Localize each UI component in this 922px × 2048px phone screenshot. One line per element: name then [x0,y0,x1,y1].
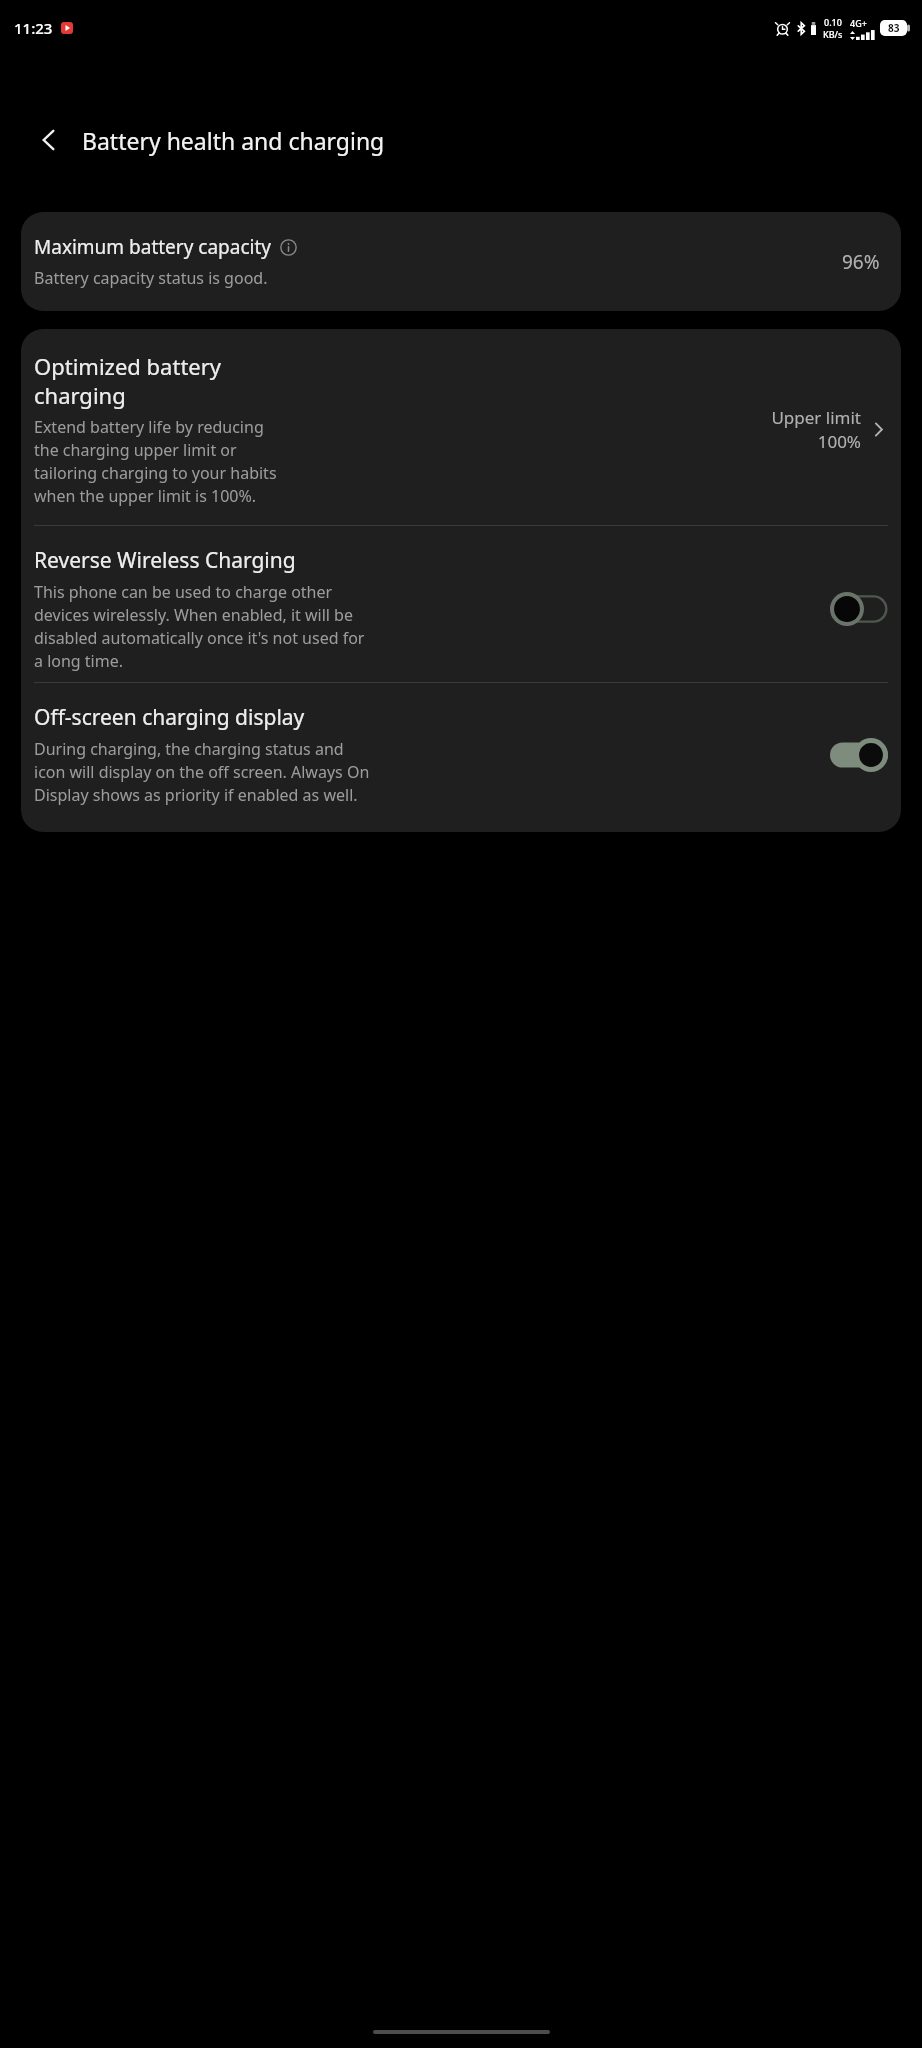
staticText: This phone can be used to charge other d… [34,581,365,672]
staticText: Maximum battery capacity [34,234,272,260]
staticText: 11:23 [14,18,53,38]
button[interactable]: Optimized battery charging [21,329,901,525]
staticText: 96% [842,249,880,275]
staticText: 83 [888,21,900,35]
staticText: Reverse Wireless Charging [34,546,296,575]
staticText: Extend battery life by reducing the char… [34,416,277,507]
button[interactable]: Back [26,117,72,163]
staticText: Optimized battery charging [34,351,222,410]
button[interactable]: Reverse Wireless Charging [21,526,901,682]
staticText: KB/s [823,28,843,40]
staticText: Upper limit 100% [771,406,861,453]
other: Reverse Wireless Charging off [830,592,888,626]
button[interactable]: Maximum battery capacity [21,212,901,311]
button[interactable]: Off-screen charging display [21,683,901,816]
other: Off-screen charging display on [830,738,888,772]
staticText: Battery health and charging [82,125,385,156]
staticText: Off-screen charging display [34,703,305,732]
staticText: 4G+ [850,17,867,29]
staticText: Battery capacity status is good. [34,267,268,289]
staticText: During charging, the charging status and… [34,738,370,806]
staticText: 0.10 [824,16,842,28]
